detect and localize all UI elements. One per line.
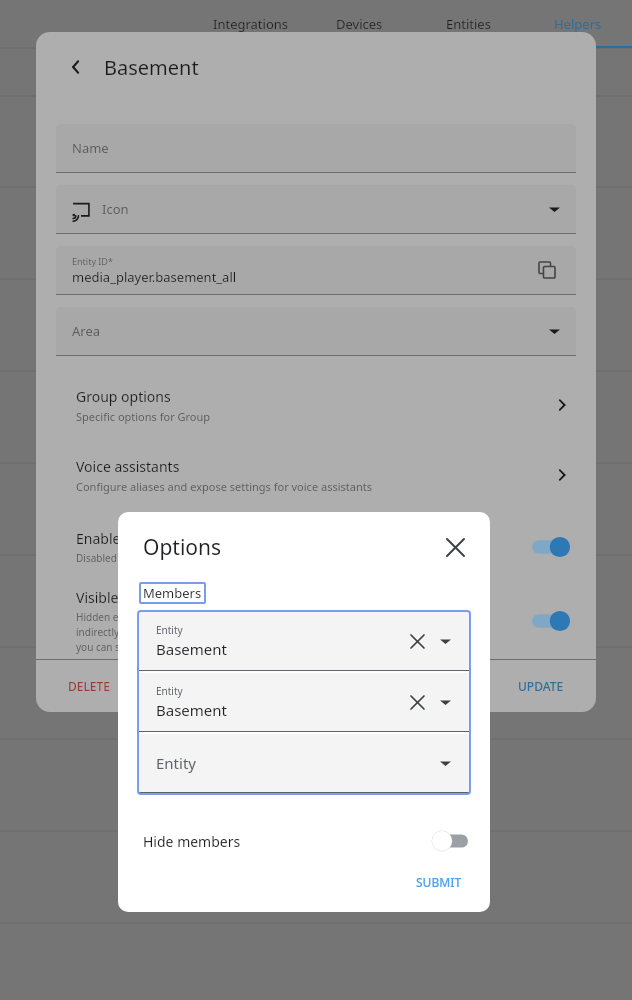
button[interactable]: Open entity picker (433, 629, 457, 653)
staticText: Entity (156, 753, 196, 773)
staticText: Enabled (76, 529, 130, 548)
button[interactable]: Entity ID* (56, 246, 576, 294)
button[interactable]: Copy entity id (534, 257, 560, 283)
staticText: Hide members (143, 832, 241, 851)
button[interactable]: Members (139, 582, 206, 604)
button[interactable]: Clear entity (405, 629, 429, 653)
button[interactable]: Entity (139, 612, 469, 670)
button[interactable]: Enabled (532, 536, 570, 558)
button[interactable]: UPDATE (510, 672, 572, 700)
staticText: Basement (156, 700, 227, 720)
button[interactable]: Open entity picker (433, 690, 457, 714)
staticText: Specific options for Group (76, 409, 211, 424)
staticText: Configure aliases and expose settings fo… (76, 479, 372, 494)
staticText: Devices (336, 15, 383, 33)
button[interactable]: Hide members (118, 821, 490, 861)
button[interactable]: Group options (36, 370, 596, 440)
button[interactable]: Back (58, 49, 94, 85)
staticText: Visible (76, 588, 119, 607)
button[interactable]: Entities (414, 0, 523, 48)
staticText: Icon (102, 200, 129, 218)
staticText: Integrations (213, 15, 289, 33)
staticText: Entity (156, 684, 183, 698)
staticText: Options (143, 533, 222, 562)
button[interactable]: Close (440, 532, 470, 562)
staticText: indirectly, for instance by automations … (76, 625, 353, 639)
button[interactable]: Visible (36, 584, 596, 658)
staticText: Basement (104, 54, 199, 81)
staticText: Group options (76, 387, 171, 406)
button[interactable]: Entity (139, 734, 469, 792)
button[interactable]: SUBMIT (408, 868, 470, 896)
button[interactable]: Helpers (523, 0, 632, 48)
staticText: Members (143, 584, 202, 602)
button[interactable]: DELETE (60, 672, 118, 700)
staticText: media_player.basement_all (72, 268, 237, 286)
button[interactable]: Visible (532, 610, 570, 632)
staticText: DELETE (68, 678, 110, 694)
button[interactable]: Devices (305, 0, 414, 48)
staticText: Helpers (554, 15, 602, 33)
staticText: Entity (156, 623, 183, 637)
staticText: Basement (156, 639, 227, 659)
button[interactable]: Name (56, 124, 576, 172)
staticText: Voice assistants (76, 457, 180, 476)
staticText: Name (72, 139, 109, 157)
button[interactable]: Icon (56, 185, 576, 233)
button[interactable]: Voice assistants (36, 440, 596, 510)
button[interactable]: Entity (139, 673, 469, 731)
button[interactable]: Open entity picker (433, 751, 457, 775)
button[interactable]: Integrations (196, 0, 305, 48)
staticText: Entity ID* (72, 255, 113, 267)
staticText: SUBMIT (416, 874, 462, 890)
button[interactable]: Hide members (432, 830, 468, 852)
staticText: Disabled entities will not be added to H… (76, 551, 329, 565)
staticText: Hidden entities will not be shown on you… (76, 610, 354, 624)
button[interactable]: Enabled (36, 510, 596, 584)
staticText: UPDATE (518, 678, 564, 694)
button[interactable]: Clear entity (405, 690, 429, 714)
staticText: Area (72, 322, 101, 340)
button[interactable]: Area (56, 307, 576, 355)
staticText: you can still access them. (76, 640, 195, 654)
staticText: Entities (446, 15, 491, 33)
